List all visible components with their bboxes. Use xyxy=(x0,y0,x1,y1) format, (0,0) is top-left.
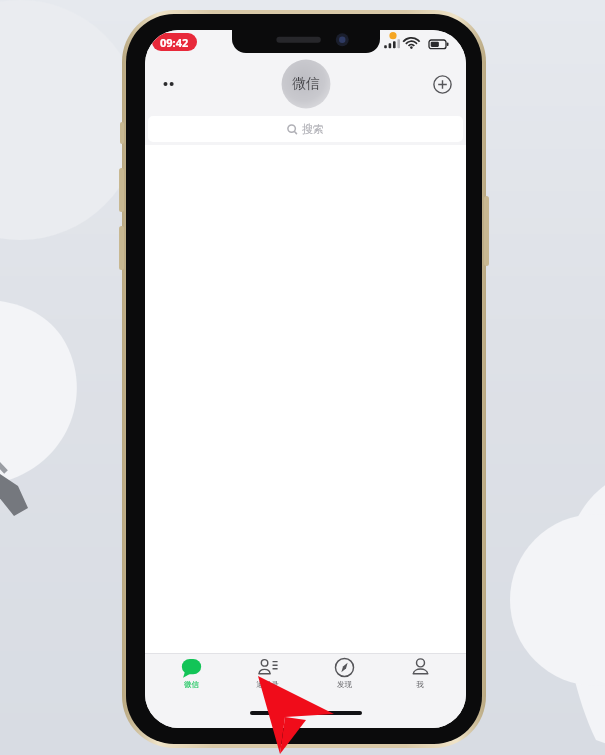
staticText: 我 xyxy=(416,680,424,689)
staticText: 微信 xyxy=(292,75,320,93)
staticText: 搜索 xyxy=(302,122,324,136)
staticText: 09:42 xyxy=(160,35,189,50)
button[interactable]: Add xyxy=(423,65,461,103)
staticText: 通讯录 xyxy=(256,680,279,689)
button[interactable]: 搜索 xyxy=(148,116,463,142)
button[interactable]: More xyxy=(150,65,188,103)
button[interactable]: 微信 xyxy=(280,58,332,110)
button[interactable]: 我 xyxy=(389,657,451,689)
staticText: 微信 xyxy=(184,680,199,689)
button[interactable]: 通讯录 xyxy=(236,657,298,689)
button[interactable]: 发现 xyxy=(313,657,375,689)
button[interactable]: 微信 xyxy=(160,657,222,689)
staticText: 发现 xyxy=(337,680,352,689)
